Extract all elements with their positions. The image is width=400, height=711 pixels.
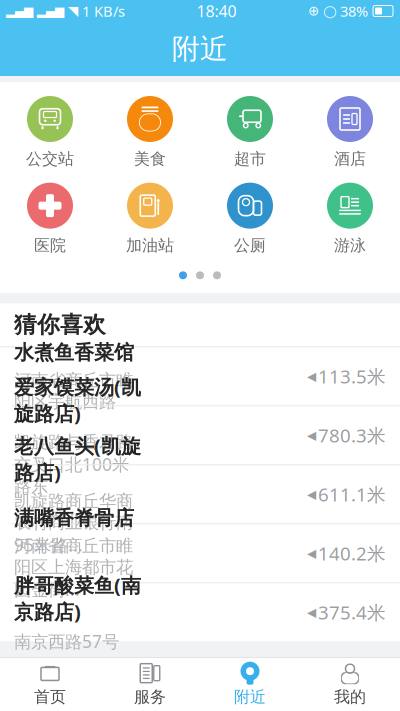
staticText: 医院 bbox=[34, 236, 66, 255]
staticText: ◀ bbox=[307, 428, 316, 442]
staticText: 凯旋路商丘华商农村商业银行南95米路... bbox=[14, 491, 133, 556]
staticText: ◀ bbox=[307, 369, 316, 383]
staticText: 猜你喜欢 bbox=[14, 311, 106, 339]
button[interactable]: 满嘴香脊骨店 bbox=[0, 524, 400, 582]
button[interactable]: 胖哥酸菜鱼(南京路店) bbox=[0, 583, 400, 641]
button[interactable]: 加油站 bbox=[100, 183, 200, 255]
button[interactable]: 美食 bbox=[100, 96, 200, 169]
staticText: 38% bbox=[340, 1, 368, 21]
button[interactable]: 医院 bbox=[0, 183, 100, 255]
staticText: 公厕 bbox=[234, 236, 266, 255]
button[interactable]: 公交站 bbox=[0, 96, 100, 169]
staticText: 胖哥酸菜鱼(南京路店) bbox=[14, 572, 141, 625]
staticText: 美食 bbox=[134, 149, 166, 169]
staticText: 超市 bbox=[234, 149, 266, 169]
staticText: 首页 bbox=[34, 687, 66, 707]
staticText: ▂▄▆ bbox=[6, 4, 33, 18]
button[interactable]: 超市 bbox=[200, 96, 300, 169]
staticText: 113.5米 bbox=[318, 364, 386, 389]
button[interactable]: 爱家馍菜汤(凯旋路店) bbox=[0, 406, 400, 464]
staticText: 水煮鱼香菜馆 bbox=[14, 340, 134, 365]
staticText: 河南省商丘市睢阳区上海都市花园金街... bbox=[14, 535, 133, 601]
button[interactable]: 我的 bbox=[300, 658, 400, 711]
staticText: 爱家馍菜汤(凯旋路店) bbox=[14, 373, 141, 426]
staticText: 加油站 bbox=[126, 236, 174, 255]
staticText: ◀ bbox=[307, 546, 316, 560]
button[interactable]: 附近 bbox=[200, 658, 300, 711]
staticText: 780.3米 bbox=[318, 423, 386, 448]
button[interactable]: 老八鱼头(凯旋路店) bbox=[0, 465, 400, 523]
staticText: 我的 bbox=[334, 687, 366, 707]
button[interactable]: 公厕 bbox=[200, 183, 300, 255]
button[interactable]: 首页 bbox=[0, 658, 100, 711]
staticText: 1 KB/s bbox=[82, 1, 125, 21]
staticText: ◀ bbox=[307, 605, 316, 619]
staticText: 公交站 bbox=[26, 149, 74, 169]
staticText: 附近 bbox=[234, 687, 266, 707]
staticText: 老八鱼头(凯旋路店) bbox=[14, 432, 141, 485]
staticText: 140.2米 bbox=[318, 541, 386, 566]
staticText: 611.1米 bbox=[318, 482, 386, 507]
staticText: 凯旋路与香君路交叉口北100米路东 bbox=[14, 432, 133, 497]
staticText: ◥ bbox=[68, 3, 78, 18]
staticText: ◯ bbox=[323, 4, 336, 18]
button[interactable]: 游泳 bbox=[300, 183, 400, 255]
staticText: 375.4米 bbox=[318, 600, 386, 625]
staticText: ▂▄▆ bbox=[37, 4, 64, 18]
staticText: 服务 bbox=[134, 687, 166, 707]
staticText: 18:40 bbox=[196, 0, 236, 22]
staticText: 游泳 bbox=[334, 236, 366, 255]
button[interactable]: 水煮鱼香菜馆 bbox=[0, 347, 400, 405]
staticText: ⊕ bbox=[308, 3, 319, 18]
button[interactable]: 服务 bbox=[100, 658, 200, 711]
staticText: 满嘴香脊骨店 bbox=[14, 506, 134, 530]
staticText: 酒店 bbox=[334, 149, 366, 169]
staticText: 附近 bbox=[172, 32, 228, 66]
staticText: ◀ bbox=[307, 487, 316, 501]
button[interactable]: 酒店 bbox=[300, 96, 400, 169]
staticText: 南京西路57号 bbox=[14, 630, 119, 653]
staticText: 河南省商丘市睢阳区宇航西路 bbox=[14, 370, 133, 412]
